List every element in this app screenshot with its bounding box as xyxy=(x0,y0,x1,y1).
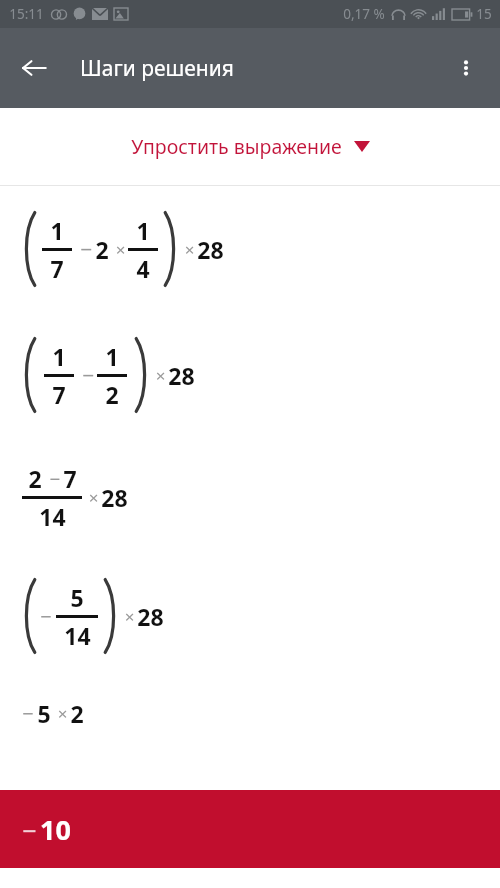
staticText: − xyxy=(74,361,97,390)
staticText: 2 xyxy=(105,379,119,410)
staticText: 5 xyxy=(70,582,84,613)
staticText: − xyxy=(42,466,63,492)
staticText: × xyxy=(109,238,128,261)
staticText: 7 xyxy=(52,379,66,410)
staticText: × xyxy=(149,364,168,387)
staticText: 28 xyxy=(197,234,224,265)
staticText: 28 xyxy=(168,360,195,391)
staticText: 14 xyxy=(39,501,66,532)
staticText: × xyxy=(178,238,197,261)
button[interactable]: 1 xyxy=(0,312,500,438)
staticText: − xyxy=(22,813,37,847)
staticText: 10 xyxy=(40,811,71,848)
staticText: 2 xyxy=(28,463,42,494)
staticText: 7 xyxy=(50,253,64,284)
staticText: 2 xyxy=(95,234,109,265)
button[interactable]: − xyxy=(0,790,500,868)
staticText: 1 xyxy=(105,341,119,372)
staticText: × xyxy=(51,702,70,725)
staticText: × xyxy=(82,486,101,509)
staticText: 4 xyxy=(136,253,150,284)
button[interactable]: Back xyxy=(6,40,62,96)
staticText: 1 xyxy=(52,341,66,372)
staticText: 14 xyxy=(64,620,91,651)
staticText: 5 xyxy=(37,698,51,729)
staticText: − xyxy=(22,700,34,727)
button[interactable]: − xyxy=(0,676,500,750)
staticText: Шаги решения xyxy=(80,54,234,83)
staticText: 2 xyxy=(70,698,84,729)
staticText: 15:11 xyxy=(9,5,44,23)
button[interactable]: Упростить выражение xyxy=(0,108,500,185)
staticText: 15 xyxy=(476,5,492,23)
staticText: 0,17 % xyxy=(343,5,385,23)
button[interactable]: 1 xyxy=(0,186,500,312)
staticText: 1 xyxy=(136,215,150,246)
staticText: 7 xyxy=(63,463,77,494)
staticText: − xyxy=(40,603,52,630)
button[interactable]: − xyxy=(0,556,500,676)
button[interactable]: 2 xyxy=(0,438,500,556)
staticText: Упростить выражение xyxy=(131,133,342,160)
staticText: − xyxy=(72,235,95,264)
staticText: × xyxy=(118,605,137,628)
staticText: 28 xyxy=(137,601,164,632)
staticText: 28 xyxy=(101,482,128,513)
button[interactable]: More options xyxy=(438,40,494,96)
staticText: 1 xyxy=(50,215,64,246)
